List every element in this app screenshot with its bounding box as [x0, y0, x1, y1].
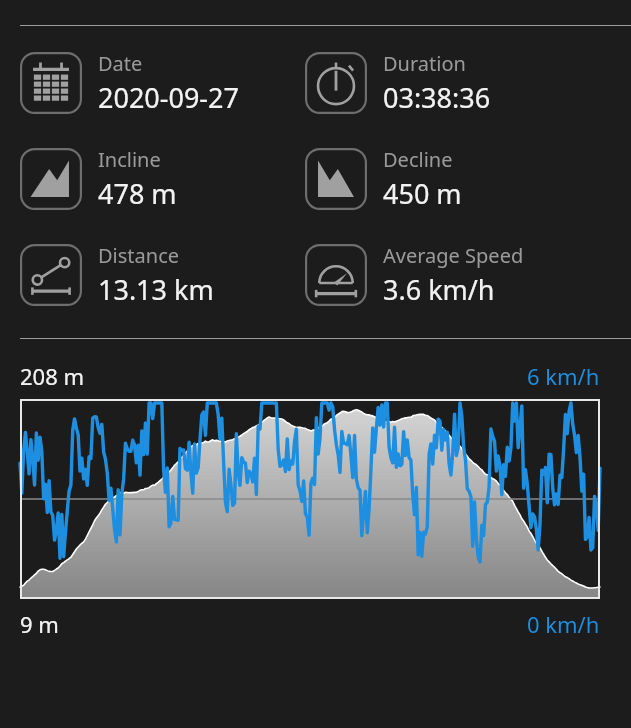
staticText: Incline — [98, 146, 161, 173]
staticText: Date — [98, 50, 143, 77]
staticText: Duration — [383, 50, 466, 77]
button[interactable]: Average Speed — [305, 240, 524, 310]
button[interactable]: Duration — [305, 48, 491, 118]
other: Incline — [20, 148, 82, 210]
staticText: 450 m — [383, 175, 462, 212]
other: Distance — [20, 244, 82, 306]
staticText: 2020-09-27 — [98, 79, 239, 116]
staticText: Decline — [383, 146, 453, 173]
staticText: Distance — [98, 242, 180, 269]
other: Average Speed — [305, 244, 367, 306]
staticText: 0 km/h — [527, 609, 600, 639]
staticText: 13.13 km — [98, 271, 214, 308]
staticText: 03:38:36 — [383, 79, 491, 116]
button[interactable]: Decline — [305, 144, 462, 214]
staticText: 208 m — [20, 361, 85, 391]
other: Date — [20, 52, 82, 114]
staticText: 9 m — [20, 609, 59, 639]
button[interactable]: Date — [20, 48, 305, 118]
other: Decline — [305, 148, 367, 210]
staticText: 6 km/h — [527, 361, 600, 391]
staticText: 478 m — [98, 175, 177, 212]
staticText: 3.6 km/h — [383, 271, 495, 308]
button[interactable]: Incline — [20, 144, 305, 214]
staticText: Average Speed — [383, 242, 524, 269]
other: Duration — [305, 52, 367, 114]
button[interactable]: Distance — [20, 240, 305, 310]
